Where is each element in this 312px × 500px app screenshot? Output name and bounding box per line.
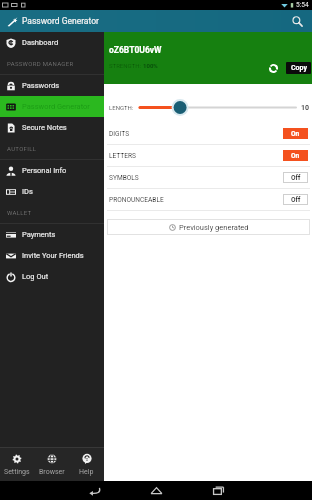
staticText: Payments <box>22 230 56 239</box>
staticText: SYMBOLS <box>109 174 139 182</box>
staticText: Help <box>79 468 94 476</box>
staticText: DIGITS <box>109 130 130 138</box>
staticText: WALLET <box>7 209 32 216</box>
staticText: PASSWORD MANAGER <box>7 60 74 67</box>
button[interactable]: Home <box>125 481 187 500</box>
staticText: Settings <box>4 468 30 476</box>
button[interactable]: Password Generator <box>0 96 104 117</box>
button[interactable]: Copy <box>286 62 311 74</box>
other: App logo <box>7 16 18 27</box>
staticText: Password Generator <box>22 16 99 26</box>
staticText: Off <box>291 174 301 182</box>
staticText: LENGTH: <box>109 104 134 111</box>
staticText: IDs <box>22 187 33 196</box>
staticText: On <box>291 130 300 138</box>
staticText: AUTOFILL <box>7 145 37 152</box>
button[interactable]: Previously generated <box>107 219 310 235</box>
staticText: Browser <box>39 468 65 476</box>
button[interactable]: PRONOUNCEABLE <box>104 189 312 210</box>
staticText: 5:54 <box>296 1 309 9</box>
button[interactable]: Browser <box>34 448 69 481</box>
button[interactable]: Personal Info <box>0 160 104 181</box>
staticText: Off <box>291 196 301 204</box>
button[interactable]: Settings <box>0 448 34 481</box>
staticText: 100% <box>143 62 158 69</box>
staticText: Copy <box>291 64 307 72</box>
staticText: Password Generator <box>22 102 90 111</box>
staticText: Dashboard <box>22 38 59 47</box>
button[interactable]: Payments <box>0 224 104 245</box>
button[interactable]: DIGITS <box>104 123 312 144</box>
button[interactable]: Invite Your Friends <box>0 245 104 266</box>
staticText: LETTERS <box>109 152 137 160</box>
staticText: On <box>291 152 300 160</box>
button[interactable]: IDs <box>0 181 104 202</box>
staticText: STRENGTH: <box>109 62 143 69</box>
button[interactable]: Help <box>69 448 104 481</box>
staticText: Personal Info <box>22 166 67 175</box>
button[interactable] <box>139 96 297 119</box>
staticText: Invite Your Friends <box>22 251 84 260</box>
staticText: Log Out <box>22 272 49 281</box>
button[interactable]: SYMBOLS <box>104 167 312 188</box>
staticText: Previously generated <box>179 223 249 232</box>
staticText: PRONOUNCEABLE <box>109 196 164 204</box>
staticText: 10 <box>301 104 310 112</box>
button[interactable]: Dashboard <box>0 32 104 53</box>
button[interactable]: Secure Notes <box>0 117 104 138</box>
button[interactable]: Passwords <box>0 75 104 96</box>
staticText: Secure Notes <box>22 123 67 132</box>
button[interactable]: Search <box>288 12 306 30</box>
button[interactable]: Recents <box>187 481 249 500</box>
staticText: Passwords <box>22 81 59 90</box>
button[interactable]: Back <box>63 481 125 500</box>
button[interactable]: LETTERS <box>104 145 312 166</box>
button[interactable]: Regenerate <box>266 61 280 75</box>
button[interactable]: Log Out <box>0 266 104 287</box>
staticText: oZ6BT0U6vW <box>109 45 162 55</box>
